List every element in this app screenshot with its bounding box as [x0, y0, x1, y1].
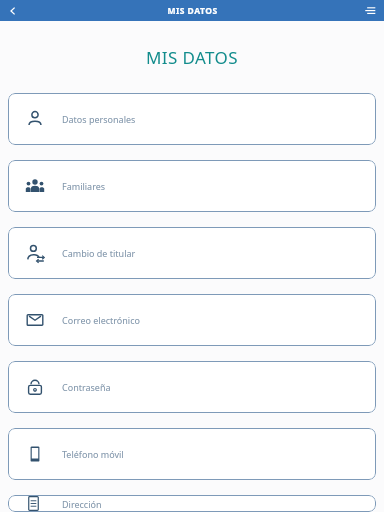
button[interactable]: Menu [358, 0, 384, 21]
staticText: Familiares [62, 180, 106, 192]
staticText: Contraseña [62, 381, 111, 393]
button[interactable]: Correo electrónico [8, 294, 376, 346]
staticText: Datos personales [62, 113, 136, 125]
button[interactable]: Cambio de titular [8, 227, 376, 279]
staticText: Cambio de titular [62, 247, 136, 259]
staticText: Dirección [62, 498, 102, 510]
button[interactable]: Familiares [8, 160, 376, 212]
staticText: MIS DATOS [146, 46, 238, 69]
button[interactable]: Back [0, 0, 26, 21]
button[interactable]: Datos personales [8, 93, 376, 145]
staticText: MIS DATOS [167, 5, 218, 17]
button[interactable]: Contraseña [8, 361, 376, 413]
staticText: Correo electrónico [62, 314, 140, 326]
staticText: Teléfono móvil [62, 448, 124, 460]
button[interactable]: Teléfono móvil [8, 428, 376, 480]
button[interactable]: Dirección [8, 495, 376, 512]
